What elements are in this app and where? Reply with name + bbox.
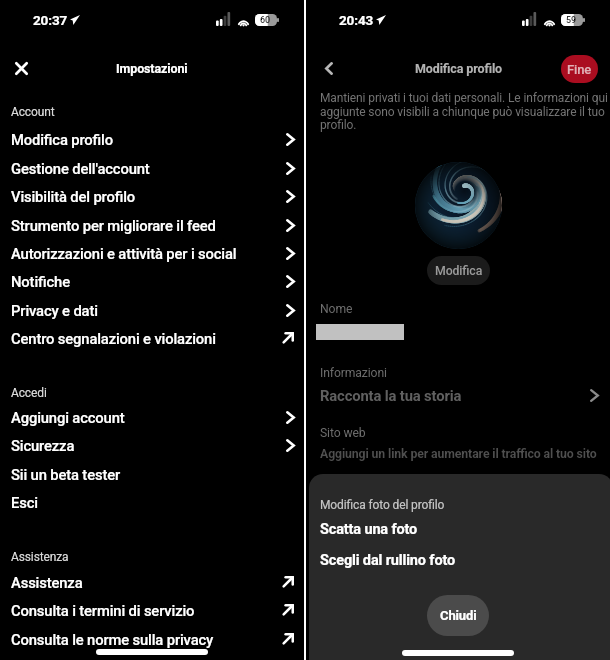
button[interactable]: Chiudi [427,595,489,636]
staticText: Visibilità del profilo [11,188,136,205]
staticText: Scegli dal rullino foto [320,552,456,569]
button[interactable]: Scegli dal rullino foto [309,549,610,571]
staticText: Accedi [11,386,47,400]
button[interactable]: Back [316,56,341,81]
button[interactable]: Autorizzazioni e attività per i social [0,239,304,267]
staticText: Privacy e dati [11,302,98,319]
button[interactable]: Notifiche [0,267,304,295]
button[interactable]: Scatta una foto [309,518,610,540]
staticText: Modifica foto del profilo [320,498,445,512]
button[interactable]: Strumento per migliorare il feed [0,211,304,239]
staticText: 60 [260,15,271,26]
staticText: 20:43 [339,12,374,28]
staticText: Chiudi [440,608,477,623]
staticText: 20:37 [33,12,68,28]
staticText: Nome [320,302,353,316]
staticText: Aggiungi account [11,409,125,426]
button[interactable]: Gestione dell'account [0,154,304,182]
staticText: Strumento per migliorare il feed [11,217,216,234]
button[interactable]: Privacy e dati [0,296,304,324]
staticText: Fine [567,62,592,77]
staticText: Sito web [320,426,366,440]
staticText: Assistenza [11,550,69,564]
button[interactable]: Close [9,56,34,81]
staticText: Informazioni [320,366,387,380]
button[interactable]: Consulta le norme sulla privacy [0,625,304,653]
button[interactable]: Racconta la tua storia [306,384,610,406]
staticText: Account [11,105,55,119]
button[interactable]: Centro segnalazioni e violazioni [0,324,304,352]
staticText: Modifica [435,264,483,278]
staticText: 59 [566,15,577,26]
staticText: Esci [11,494,38,511]
button[interactable]: Aggiungi account [0,403,304,431]
staticText: Consulta i termini di servizio [11,602,195,619]
button[interactable]: Esci [0,488,304,516]
staticText: Mantieni privati i tuoi dati personali. … [320,91,610,131]
staticText: Modifica profilo [415,61,502,76]
button[interactable]: Fine [561,55,598,83]
staticText: Gestione dell'account [11,160,150,177]
staticText: Racconta la tua storia [320,387,462,404]
button[interactable]: Sii un beta tester [0,460,304,488]
staticText: Aggiungi un link per aumentare il traffi… [320,447,597,461]
staticText: Consulta le norme sulla privacy [11,631,214,648]
staticText: Autorizzazioni e attività per i social [11,245,237,262]
staticText: Sii un beta tester [11,466,121,483]
button[interactable]: Modifica profilo [0,125,304,153]
button[interactable]: Sicurezza [0,431,304,459]
button[interactable]: Consulta i termini di servizio [0,596,304,624]
button[interactable]: Assistenza [0,568,304,596]
staticText: Modifica profilo [11,131,113,148]
staticText: Notifiche [11,273,70,290]
staticText: Centro segnalazioni e violazioni [11,330,216,347]
staticText: Assistenza [11,574,83,591]
staticText: Sicurezza [11,437,75,454]
staticText: Scatta una foto [320,521,418,538]
staticText: Impostazioni [116,61,188,76]
button[interactable]: Visibilità del profilo [0,182,304,210]
button[interactable]: Modifica [427,256,490,285]
